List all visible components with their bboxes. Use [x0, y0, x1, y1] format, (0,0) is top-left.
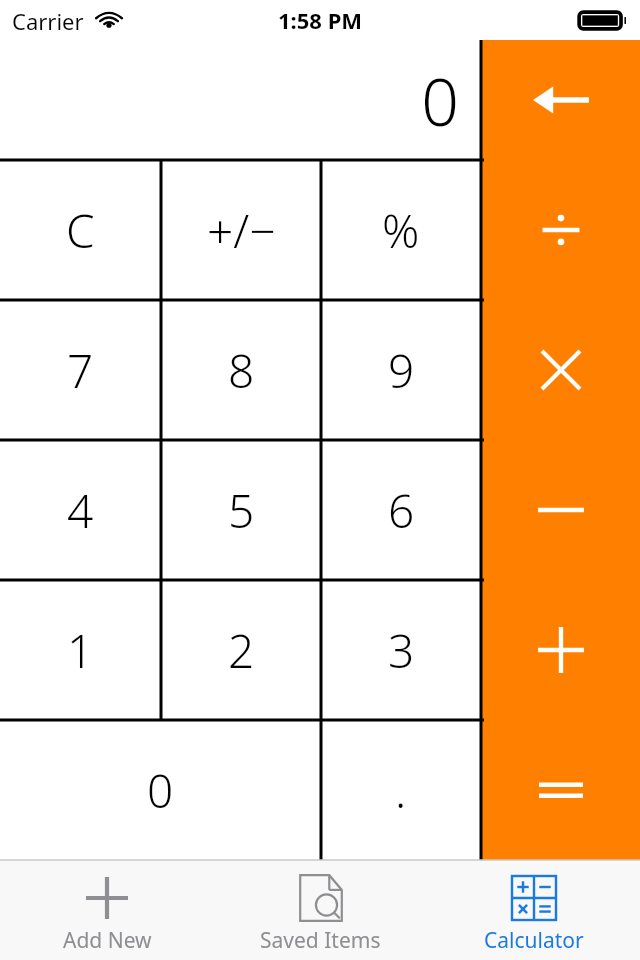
button[interactable]: 2: [161, 580, 321, 720]
staticText: Add New: [63, 926, 152, 955]
staticText: C: [66, 199, 95, 262]
staticText: +/−: [207, 199, 276, 262]
staticText: 0: [147, 759, 174, 822]
staticText: 4: [67, 479, 94, 542]
button[interactable]: Plus: [481, 580, 640, 720]
staticText: Saved Items: [260, 926, 381, 955]
button[interactable]: +/−: [161, 160, 321, 300]
button[interactable]: .: [321, 720, 481, 860]
button[interactable]: 1: [0, 580, 161, 720]
button[interactable]: %: [321, 160, 481, 300]
button[interactable]: 7: [0, 300, 161, 440]
button[interactable]: Divide: [481, 160, 640, 300]
button[interactable]: 0: [0, 720, 321, 860]
button[interactable]: Calculator: [427, 860, 640, 960]
staticText: 7: [67, 339, 94, 402]
staticText: %: [382, 199, 420, 262]
button[interactable]: Equals: [481, 720, 640, 860]
staticText: 5: [228, 479, 255, 542]
staticText: 3: [388, 619, 415, 682]
button[interactable]: 9: [321, 300, 481, 440]
staticText: Calculator: [484, 926, 584, 955]
button[interactable]: 8: [161, 300, 321, 440]
staticText: 1: [67, 619, 94, 682]
button[interactable]: Add New: [0, 860, 214, 960]
button[interactable]: Minus: [481, 440, 640, 580]
button[interactable]: 6: [321, 440, 481, 580]
staticText: 9: [388, 339, 415, 402]
staticText: .: [395, 759, 407, 822]
staticText: 8: [228, 339, 255, 402]
button[interactable]: Backspace: [481, 40, 640, 160]
button[interactable]: 3: [321, 580, 481, 720]
button[interactable]: Multiply: [481, 300, 640, 440]
staticText: 2: [228, 619, 255, 682]
staticText: 0: [421, 55, 459, 145]
staticText: Carrier: [12, 6, 84, 36]
button[interactable]: Saved Items: [214, 860, 427, 960]
staticText: 6: [388, 479, 415, 542]
button[interactable]: 4: [0, 440, 161, 580]
staticText: 1:58 PM: [278, 5, 363, 35]
button[interactable]: 5: [161, 440, 321, 580]
button[interactable]: C: [0, 160, 161, 300]
